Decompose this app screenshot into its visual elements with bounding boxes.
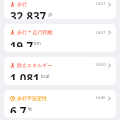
staticText: 6.7 <box>10 104 27 113</box>
staticText: kcal <box>41 73 50 79</box>
button[interactable]: 静止エネルギー <box>4 57 116 85</box>
staticText: % <box>28 106 32 112</box>
staticText: 14:51 <box>95 1 106 7</box>
button[interactable]: 歩行不安定性 <box>4 90 116 118</box>
staticText: 32,837 <box>10 9 47 19</box>
staticText: 静止エネルギー <box>17 62 53 68</box>
button[interactable]: 歩行 + 走行距離 <box>4 24 116 52</box>
staticText: 19.7 <box>10 39 33 47</box>
staticText: km <box>34 40 41 46</box>
staticText: 歩行不安定性 <box>17 95 47 101</box>
staticText: 1,081 <box>10 71 40 80</box>
staticText: 14:50 <box>95 62 106 68</box>
staticText: 歩行 + 走行距離 <box>17 29 53 36</box>
staticText: 歩行 <box>17 1 27 7</box>
staticText: 14:51 <box>95 30 106 36</box>
staticText: 14:46 <box>95 95 106 101</box>
button[interactable]: 歩行 <box>4 0 116 19</box>
staticText: 歩 <box>48 12 53 18</box>
